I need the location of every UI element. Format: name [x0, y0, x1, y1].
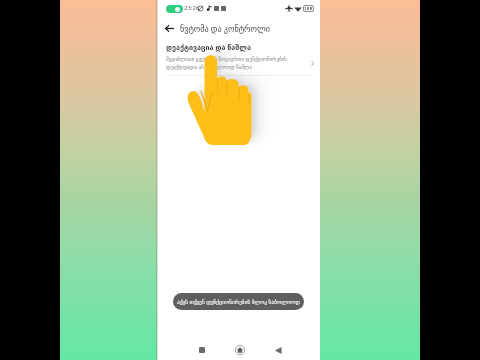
button[interactable]: Back — [270, 342, 286, 358]
button[interactable]: Back — [162, 21, 177, 36]
staticText: 23:26 — [184, 4, 200, 12]
button[interactable]: Recent apps — [194, 342, 210, 358]
staticText: დეაქტივაცია და წაშლა — [166, 42, 251, 52]
staticText: შეგიძლიათ გვერდის ზოგიერთი ფუნქციონირები… — [166, 56, 304, 70]
staticText: ნვტომა და კონტროლი — [180, 23, 270, 34]
staticText: აქვს თქვენ ფუნქციონირების ბლოკ საბოლოოდ — [177, 298, 300, 305]
button[interactable]: დეაქტივაცია და წაშლა — [157, 38, 320, 75]
button[interactable]: Home — [232, 342, 248, 358]
button[interactable]: აქვს თქვენ ფუნქციონირების ბლოკ საბოლოოდ — [173, 293, 304, 310]
